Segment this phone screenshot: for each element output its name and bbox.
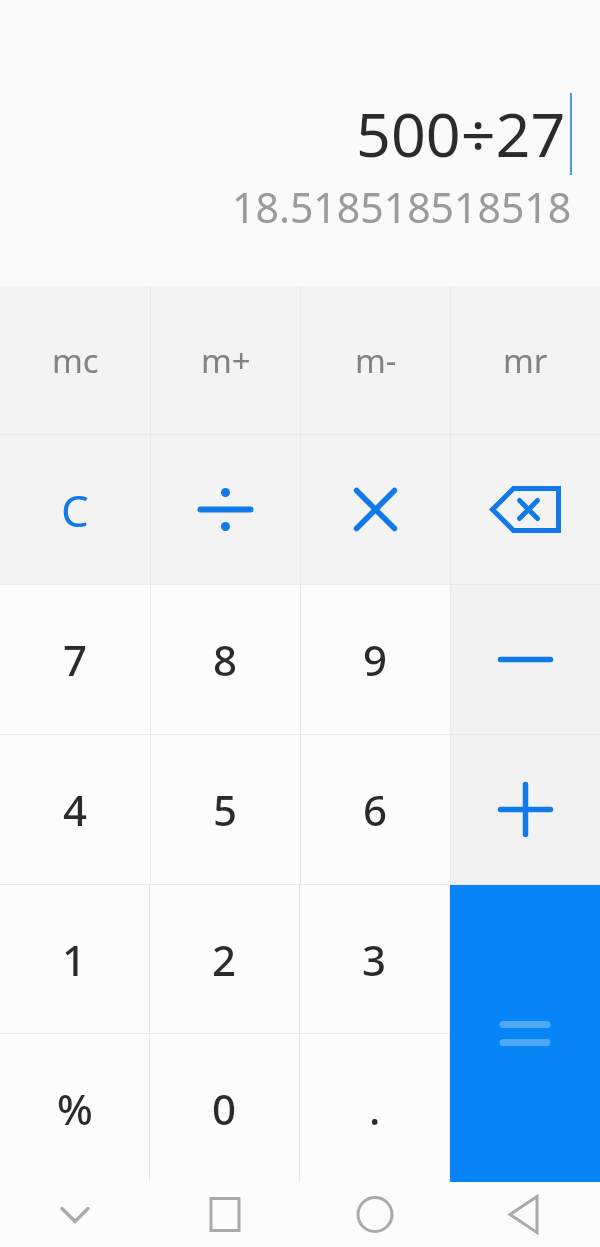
button[interactable]: 7 (0, 585, 150, 734)
button[interactable]: 1 (0, 885, 149, 1033)
staticText: 9 (363, 631, 388, 688)
staticText: 5 (213, 781, 238, 838)
button[interactable]: mr (451, 286, 600, 434)
button[interactable]: mc (0, 286, 150, 434)
button[interactable]: Plus (451, 735, 600, 884)
button[interactable]: 5 (151, 735, 300, 884)
button[interactable]: 0 (150, 1034, 299, 1182)
staticText: 0 (212, 1080, 237, 1137)
staticText: 3 (362, 931, 387, 988)
button[interactable]: Recents (150, 1182, 300, 1247)
staticText: 8 (213, 631, 238, 688)
staticText: mr (503, 338, 548, 383)
staticText: C (61, 480, 89, 540)
button[interactable]: . (300, 1034, 449, 1182)
staticText: 500÷27 (356, 92, 566, 175)
button[interactable]: Home (300, 1182, 450, 1247)
button[interactable]: % (0, 1034, 149, 1182)
button[interactable]: m+ (151, 286, 300, 434)
staticText: mc (52, 338, 99, 383)
button[interactable]: 9 (301, 585, 450, 734)
button[interactable]: Back (450, 1182, 600, 1247)
button[interactable]: Backspace (451, 435, 600, 584)
button[interactable]: 4 (0, 735, 150, 884)
button[interactable]: Minus (451, 585, 600, 734)
staticText: 7 (63, 631, 88, 688)
staticText: . (369, 1080, 381, 1137)
staticText: % (57, 1080, 93, 1137)
button[interactable]: Multiply (301, 435, 450, 584)
button[interactable]: Equals (450, 885, 600, 1182)
staticText: m- (355, 338, 397, 383)
staticText: 18.518518518518 (232, 179, 572, 235)
staticText: 2 (212, 931, 237, 988)
button[interactable]: m- (301, 286, 450, 434)
button[interactable]: Hide keyboard (0, 1182, 150, 1247)
staticText: 1 (62, 931, 87, 988)
button[interactable]: 3 (300, 885, 449, 1033)
staticText: 4 (63, 781, 88, 838)
button[interactable]: 2 (150, 885, 299, 1033)
button[interactable]: Divide (151, 435, 300, 584)
staticText: 6 (363, 781, 388, 838)
button[interactable]: 8 (151, 585, 300, 734)
staticText: m+ (201, 338, 251, 383)
button[interactable]: C (0, 435, 150, 584)
button[interactable]: 6 (301, 735, 450, 884)
